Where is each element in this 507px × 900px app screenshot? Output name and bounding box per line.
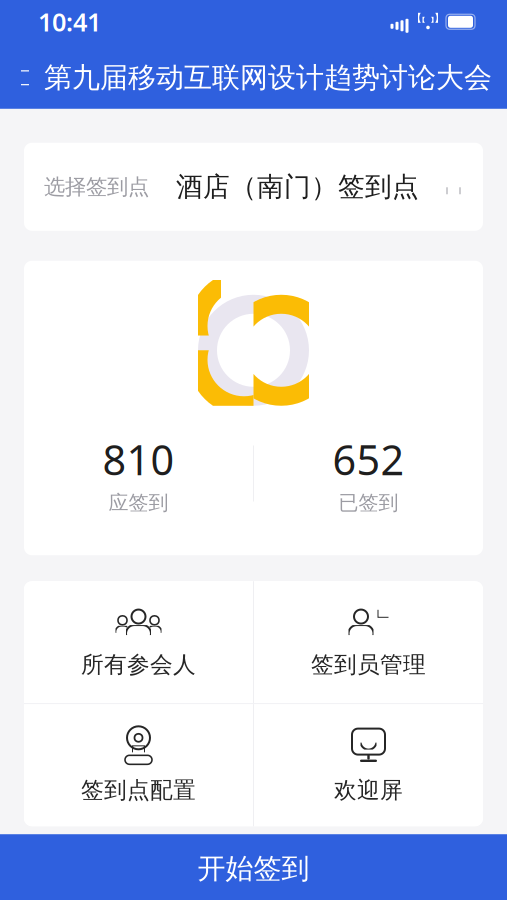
button[interactable]: 签到点配置 (24, 704, 253, 826)
button[interactable]: 开始签到 (0, 834, 507, 900)
staticText: 酒店（南门）签到点 (176, 170, 419, 203)
staticText: 应签到 (108, 491, 168, 515)
staticText: 10:41 (38, 5, 101, 39)
button[interactable]: 所有参会人 (24, 581, 253, 703)
staticText: 选择签到点 (44, 174, 149, 200)
staticText: 开始签到 (197, 851, 309, 886)
button[interactable]: 签到员管理 (254, 581, 483, 703)
staticText: 签到点配置 (81, 776, 196, 804)
staticText: 第九届移动互联网设计趋势讨论大会 (44, 61, 492, 95)
button[interactable]: Back (14, 58, 44, 98)
staticText: 所有参会人 (81, 651, 196, 679)
staticText: 已签到 (338, 491, 398, 515)
staticText: 签到员管理 (311, 651, 426, 679)
button[interactable]: 选择签到点 (24, 143, 483, 231)
staticText: 欢迎屏 (334, 776, 403, 804)
button[interactable]: 欢迎屏 (254, 704, 483, 826)
staticText: 652 (332, 432, 404, 487)
staticText: 810 (102, 432, 174, 487)
